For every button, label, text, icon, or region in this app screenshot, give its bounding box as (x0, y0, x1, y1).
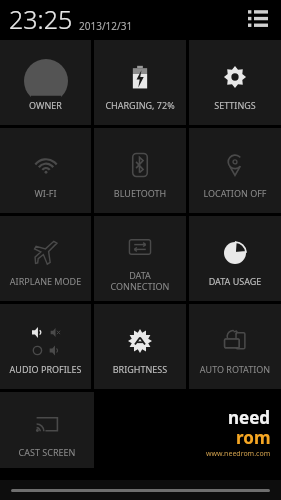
staticText: CHARGING, 72% (96, 99, 184, 111)
staticText: BLUETOOTH (96, 187, 184, 199)
button[interactable]: Notifications list (243, 4, 273, 34)
staticText: rom (236, 426, 271, 449)
staticText: www.needrom.com (206, 449, 271, 459)
staticText: OWNER (2, 99, 89, 111)
staticText: 23:25 (9, 2, 73, 36)
button[interactable]: AIRPLANE MODE (0, 216, 91, 301)
button[interactable]: Collapse panel (11, 489, 270, 492)
staticText: 2013/12/31 (79, 19, 133, 33)
button[interactable]: CHARGING, 72% (94, 40, 186, 125)
staticText: WI-FI (2, 187, 89, 199)
button[interactable]: WI-FI (0, 128, 91, 213)
button[interactable]: BRIGHTNESS (94, 304, 186, 389)
button[interactable]: BLUETOOTH (94, 128, 186, 213)
button[interactable]: DATA USAGE (189, 216, 281, 301)
staticText: DATA USAGE (191, 275, 279, 287)
staticText: AUDIO PROFILES (2, 363, 89, 375)
staticText: LOCATION OFF (191, 187, 279, 199)
button[interactable]: LOCATION OFF (189, 128, 281, 213)
button[interactable]: CAST SCREEN (0, 392, 94, 468)
staticText: BRIGHTNESS (96, 363, 184, 375)
button[interactable]: AUDIO PROFILES (0, 304, 91, 389)
staticText: AIRPLANE MODE (2, 275, 89, 287)
button[interactable]: AUTO ROTATION (189, 304, 281, 389)
button[interactable]: OWNER (0, 40, 91, 125)
staticText: need (228, 406, 271, 429)
staticText: CAST SCREEN (2, 446, 92, 458)
staticText: DATA CONNECTION (96, 269, 184, 292)
staticText: SETTINGS (191, 99, 279, 111)
button[interactable]: SETTINGS (189, 40, 281, 125)
staticText: AUTO ROTATION (191, 363, 279, 375)
button[interactable]: DATA CONNECTION (94, 216, 186, 301)
